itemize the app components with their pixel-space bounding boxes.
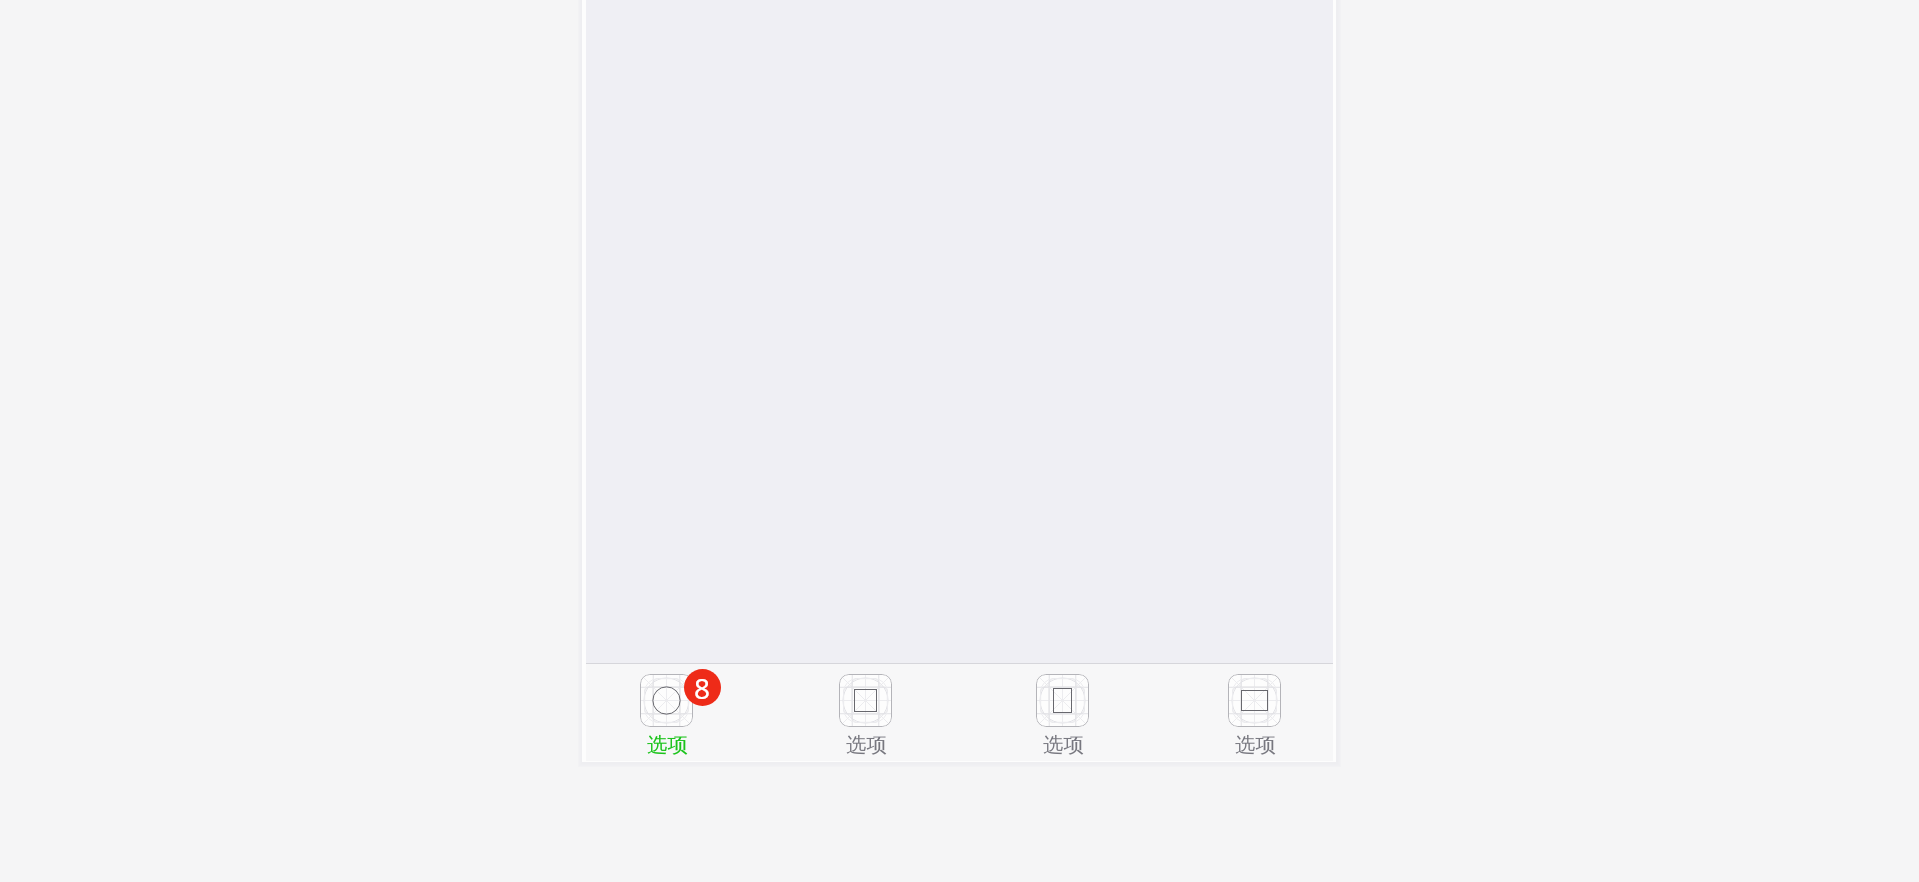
button[interactable]: 选项 tab 4 [1184, 664, 1324, 761]
button[interactable]: 选项 tab 2 [795, 664, 935, 761]
other: Landscape rectangle icon [1228, 674, 1281, 727]
other: Portrait rectangle icon [1036, 674, 1089, 727]
staticText: 8 [694, 669, 711, 706]
staticText: 选项 [1235, 732, 1276, 758]
button[interactable]: 选项 tab 1 [596, 664, 736, 761]
staticText: 选项 [647, 732, 688, 758]
staticText: 选项 [846, 732, 887, 758]
button[interactable]: 选项 tab 3 [992, 664, 1132, 761]
staticText: 选项 [1043, 732, 1084, 758]
other: Circle icon [640, 674, 693, 727]
other: Square icon [839, 674, 892, 727]
